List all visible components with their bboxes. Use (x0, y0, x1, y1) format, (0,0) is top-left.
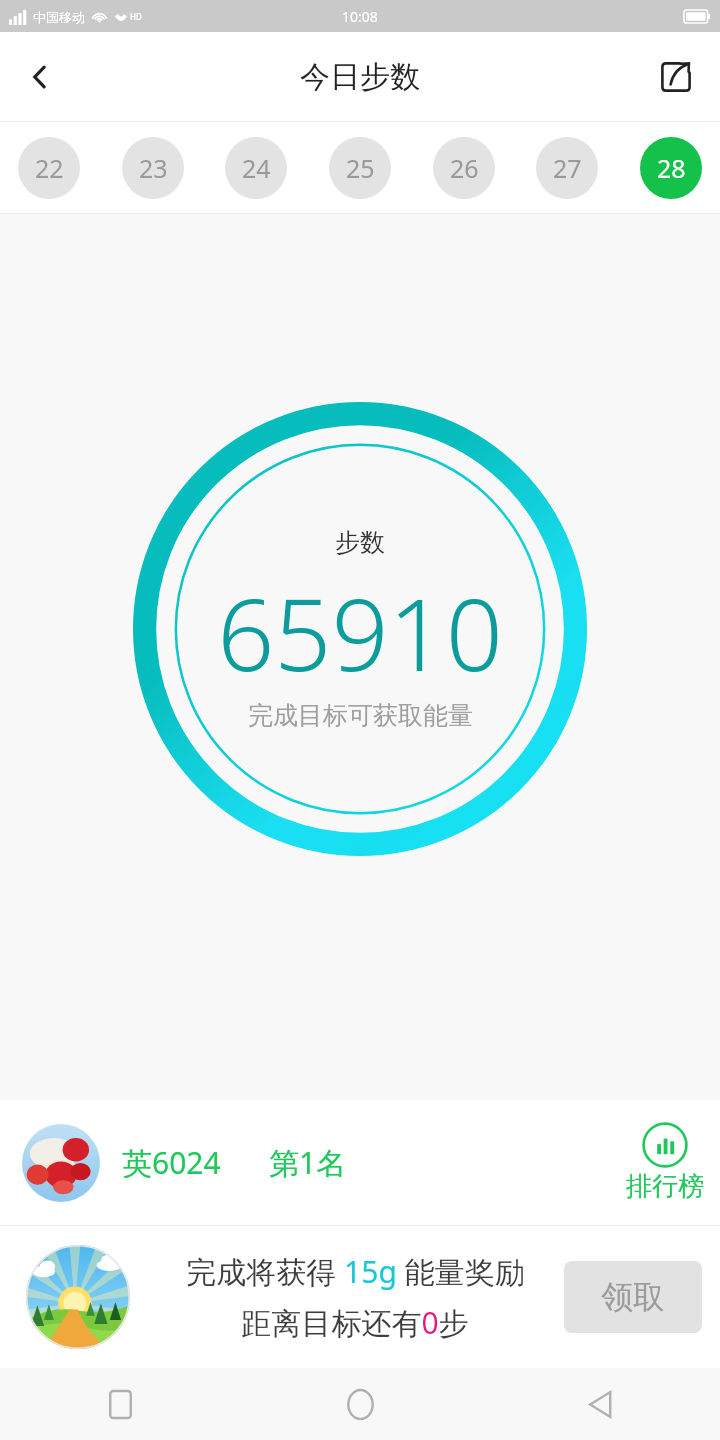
button[interactable]: Recents (85, 1369, 155, 1439)
staticText: 28 (657, 151, 686, 185)
button[interactable]: 26 (433, 137, 495, 199)
staticText: 英6024 (122, 1142, 221, 1183)
button[interactable]: 25 (329, 137, 391, 199)
button[interactable]: 22 (18, 137, 80, 199)
staticText: 24 (242, 151, 271, 185)
staticText: 26 (450, 151, 479, 185)
button[interactable]: 排行榜 (626, 1122, 704, 1203)
button[interactable]: Share (644, 45, 708, 109)
button[interactable]: 24 (225, 137, 287, 199)
staticText: 65910 (217, 564, 503, 700)
staticText: 27 (553, 151, 582, 185)
button[interactable]: 领取 (564, 1261, 702, 1333)
staticText: HD (130, 11, 142, 22)
staticText: 步数 (335, 527, 385, 558)
staticText: 10:08 (342, 7, 378, 26)
staticText: 23 (139, 151, 168, 185)
button[interactable]: 28 (640, 137, 702, 199)
staticText: 第1名 (269, 1142, 347, 1183)
staticText: 完成将获得 15g 能量奖励 (186, 1251, 525, 1292)
staticText: 完成目标可获取能量 (248, 700, 473, 731)
button[interactable]: Back (565, 1369, 635, 1439)
button[interactable]: 23 (122, 137, 184, 199)
staticText: 排行榜 (626, 1170, 704, 1203)
staticText: 距离目标还有0步 (241, 1302, 469, 1343)
staticText: 中国移动 (33, 9, 85, 25)
staticText: 22 (35, 151, 64, 185)
button[interactable]: Home (325, 1369, 395, 1439)
button[interactable]: Back (10, 47, 70, 107)
staticText: 今日步数 (300, 58, 420, 96)
staticText: 领取 (601, 1277, 665, 1317)
button[interactable]: 英6024 (0, 1100, 720, 1225)
button[interactable]: 27 (536, 137, 598, 199)
staticText: 25 (346, 151, 375, 185)
